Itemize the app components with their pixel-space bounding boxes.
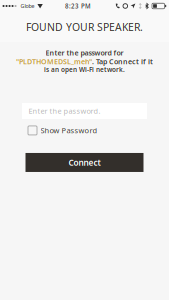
staticText: Enter the password for [45,48,123,58]
staticText: . Tap Connect if it [92,57,153,66]
staticText: Connect [68,157,100,168]
staticText: Show Password [40,125,97,136]
staticText: Globe [21,2,35,10]
staticText: "PLDTHOMEDSL_meh" [16,57,92,66]
button[interactable]: Connect [25,153,143,172]
staticText: 8:23 PM [65,2,91,10]
button[interactable]: Show Password [22,125,147,136]
staticText: Enter the password. [28,106,100,116]
staticText: is an open Wi-Fi network. [44,65,125,74]
staticText: FOUND YOUR SPEAKER. [26,20,143,34]
